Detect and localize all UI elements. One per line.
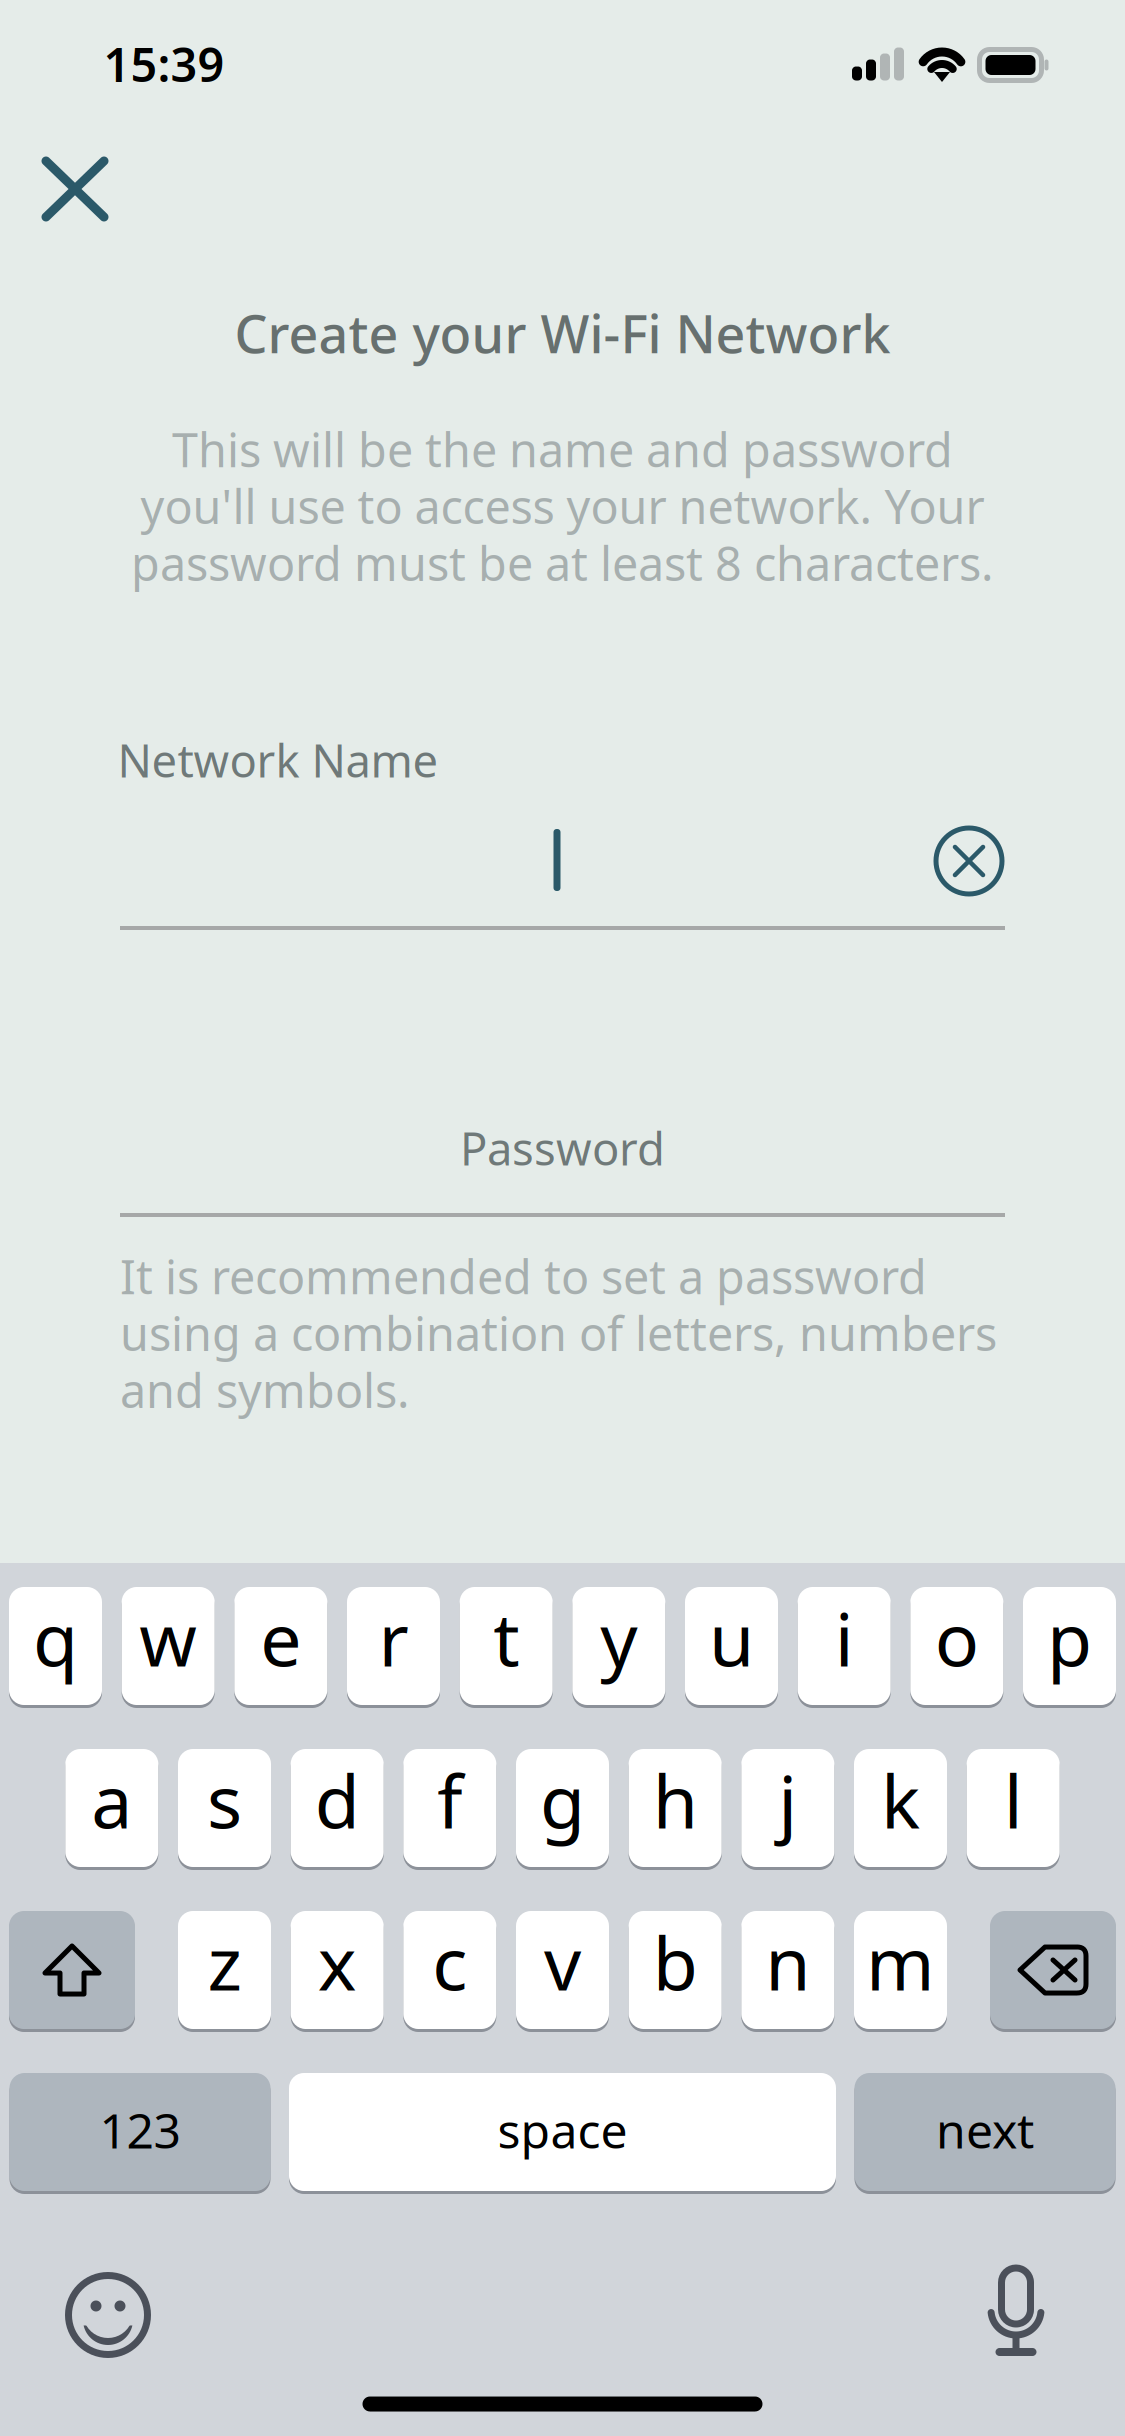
button[interactable]: t — [460, 1585, 553, 1707]
button[interactable]: e — [234, 1585, 327, 1707]
button[interactable]: space — [289, 2071, 836, 2193]
button[interactable]: c — [403, 1909, 496, 2031]
staticText: next — [936, 2098, 1034, 2162]
staticText: w — [139, 1589, 197, 1687]
staticText: Create your Wi-Fi Network — [234, 298, 890, 368]
staticText: n — [765, 1913, 810, 2011]
staticText: s — [207, 1751, 242, 1849]
button[interactable]: i — [798, 1585, 891, 1707]
staticText: This will be the name and password — [172, 418, 953, 480]
button[interactable]: x — [291, 1909, 384, 2031]
button[interactable]: o — [910, 1585, 1003, 1707]
button[interactable]: p — [1023, 1585, 1116, 1707]
staticText: o — [935, 1589, 979, 1687]
staticText: c — [432, 1913, 467, 2011]
staticText: space — [497, 2098, 627, 2162]
staticText: m — [866, 1913, 935, 2011]
staticText: r — [378, 1589, 408, 1687]
staticText: y — [600, 1589, 637, 1687]
staticText: password must be at least 8 characters. — [131, 532, 994, 594]
staticText: h — [653, 1751, 698, 1849]
button[interactable]: h — [629, 1747, 722, 1869]
button[interactable]: u — [685, 1585, 778, 1707]
staticText: u — [709, 1589, 754, 1687]
staticText: It is recommended to set a password — [120, 1245, 927, 1307]
button[interactable]: Close — [20, 134, 130, 244]
staticText: l — [1004, 1751, 1023, 1849]
button[interactable]: y — [572, 1585, 665, 1707]
staticText: p — [1047, 1589, 1092, 1687]
button[interactable]: l — [967, 1747, 1060, 1869]
staticText: using a combination of letters, numbers — [120, 1302, 997, 1364]
button[interactable]: d — [291, 1747, 384, 1869]
staticText: d — [315, 1751, 360, 1849]
button[interactable]: g — [516, 1747, 609, 1869]
staticText: i — [835, 1589, 854, 1687]
button[interactable]: w — [122, 1585, 215, 1707]
button[interactable]: Clear text — [924, 816, 1014, 906]
button[interactable]: z — [178, 1909, 271, 2031]
staticText: g — [540, 1751, 585, 1849]
button[interactable]: Emoji — [63, 2270, 153, 2360]
staticText: you'll use to access your network. Your — [140, 475, 984, 537]
button[interactable]: f — [403, 1747, 496, 1869]
button[interactable]: n — [741, 1909, 834, 2031]
staticText: k — [881, 1751, 920, 1849]
staticText: x — [318, 1913, 357, 2011]
button[interactable]: Dictation — [976, 2265, 1056, 2361]
button[interactable]: j — [741, 1747, 834, 1869]
staticText: b — [653, 1913, 698, 2011]
staticText: Password — [460, 1118, 665, 1178]
staticText: q — [33, 1589, 78, 1687]
staticText: z — [207, 1913, 241, 2011]
staticText: a — [91, 1751, 132, 1849]
button[interactable]: next — [854, 2071, 1115, 2193]
button[interactable]: Delete — [990, 1909, 1116, 2031]
staticText: v — [544, 1913, 581, 2011]
button[interactable]: a — [65, 1747, 158, 1869]
button[interactable]: Shift — [9, 1909, 135, 2031]
button[interactable]: q — [9, 1585, 102, 1707]
staticText: j — [778, 1751, 797, 1849]
button[interactable]: 123 — [9, 2071, 270, 2193]
button[interactable]: b — [629, 1909, 722, 2031]
button[interactable]: k — [854, 1747, 947, 1869]
staticText: f — [437, 1751, 462, 1849]
staticText: 15:39 — [103, 33, 224, 95]
staticText: t — [493, 1589, 519, 1687]
button[interactable]: m — [854, 1909, 947, 2031]
staticText: Network Name — [117, 730, 438, 790]
staticText: and symbols. — [120, 1359, 410, 1421]
button[interactable]: v — [516, 1909, 609, 2031]
staticText: e — [260, 1589, 301, 1687]
button[interactable]: s — [178, 1747, 271, 1869]
staticText: 123 — [99, 2098, 180, 2162]
button[interactable]: r — [347, 1585, 440, 1707]
